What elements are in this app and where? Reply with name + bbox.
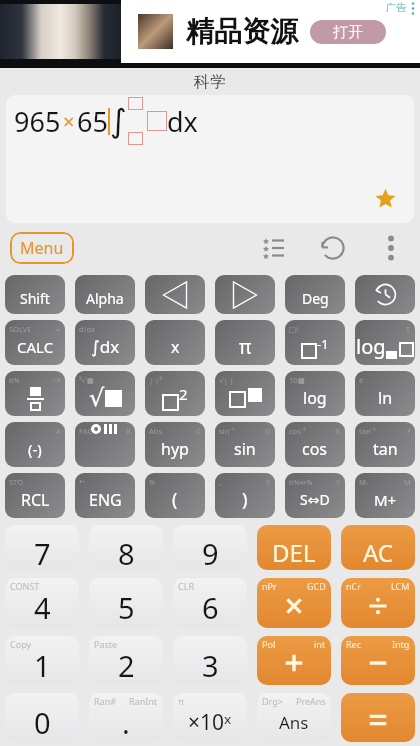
staticText: M xyxy=(404,477,411,487)
button[interactable]: 打开 xyxy=(310,20,386,44)
staticText: ln xyxy=(378,387,393,409)
button[interactable]: nPr xyxy=(257,578,331,628)
button[interactable]: Copy xyxy=(5,636,79,685)
button[interactable]: 7 xyxy=(5,525,79,570)
button[interactable]: Pol xyxy=(257,636,331,685)
staticText: (-) xyxy=(28,439,42,459)
button[interactable] xyxy=(215,275,275,314)
button[interactable]: Drg> xyxy=(257,693,331,742)
button[interactable]: 965 xyxy=(6,95,414,223)
button[interactable]: CONST xyxy=(5,578,79,628)
button[interactable] xyxy=(145,275,205,314)
staticText: D xyxy=(265,426,271,436)
button[interactable]: | |³ xyxy=(145,371,205,416)
button[interactable]: FACT xyxy=(75,422,135,467)
staticText: . xyxy=(122,703,130,742)
staticText: nCr xyxy=(346,580,361,592)
button[interactable]: π xyxy=(173,693,247,742)
button[interactable]: 5 xyxy=(89,578,163,628)
button[interactable]: 0 xyxy=(5,693,79,742)
button[interactable]: Deg xyxy=(285,275,345,314)
button[interactable]: π xyxy=(215,320,275,365)
button[interactable]: ³√■ xyxy=(75,371,135,416)
staticText: 4 xyxy=(34,588,51,627)
button[interactable]: 10■ xyxy=(285,371,345,416)
button[interactable]: x xyxy=(145,320,205,365)
button[interactable]: M- xyxy=(355,473,415,518)
button[interactable]: Σ xyxy=(355,320,415,365)
button[interactable]: b% xyxy=(5,371,65,416)
button[interactable]: A xyxy=(5,422,65,467)
button[interactable]: □! xyxy=(285,320,345,365)
staticText: Ans xyxy=(279,711,309,734)
staticText: CALC xyxy=(17,337,54,357)
staticText: Abs xyxy=(149,426,162,436)
staticText: Menu xyxy=(20,237,64,259)
button[interactable]: cos⁻¹ xyxy=(285,422,345,467)
button[interactable] xyxy=(341,693,415,742)
staticText: Y xyxy=(336,477,341,487)
staticText: , xyxy=(219,477,222,487)
button[interactable]: DEL xyxy=(257,525,331,570)
staticText: 6 xyxy=(202,588,219,627)
button[interactable]: Paste xyxy=(89,636,163,685)
button[interactable]: ← xyxy=(75,473,135,518)
other: Favorite xyxy=(375,188,396,209)
staticText: Deg xyxy=(302,289,329,308)
button[interactable]: SOLVE xyxy=(5,320,65,365)
button[interactable] xyxy=(355,275,415,314)
button[interactable]: sin⁻¹ xyxy=(215,422,275,467)
staticText: 精品资源 xyxy=(186,14,298,49)
staticText: Shift xyxy=(20,289,50,308)
staticText: tan xyxy=(373,438,398,460)
button[interactable]: 3 xyxy=(173,636,247,685)
button[interactable]: Undo xyxy=(320,235,346,261)
staticText: ×10ˣ xyxy=(188,708,232,737)
staticText: sin xyxy=(234,438,256,460)
staticText: Σ xyxy=(406,324,411,334)
staticText: 广告 xyxy=(386,1,406,14)
staticText: ∫ xyxy=(110,102,127,139)
staticText: M- xyxy=(359,477,369,487)
button[interactable]: AC xyxy=(341,525,415,570)
button[interactable]: √| | xyxy=(215,371,275,416)
button[interactable]: nCr xyxy=(341,578,415,628)
staticText: E xyxy=(336,426,341,436)
button[interactable]: More options xyxy=(385,235,397,261)
staticText: cos⁻¹ xyxy=(289,426,306,436)
staticText: FACT xyxy=(79,426,97,436)
staticText: 65 xyxy=(77,103,108,140)
button[interactable]: % xyxy=(145,473,205,518)
button[interactable]: Abs xyxy=(145,422,205,467)
button[interactable]: Menu xyxy=(10,232,74,264)
button[interactable]: Ran# xyxy=(89,693,163,742)
button[interactable]: 9 xyxy=(173,525,247,570)
staticText: ← xyxy=(79,477,86,486)
button[interactable]: 8 xyxy=(89,525,163,570)
staticText: × xyxy=(63,108,75,135)
staticText: F xyxy=(407,426,411,436)
staticText: b% xyxy=(9,375,20,385)
staticText: PreAns xyxy=(296,695,326,707)
staticText: 8 xyxy=(118,534,135,570)
button[interactable]: Shift xyxy=(5,275,65,314)
staticText: -1 xyxy=(317,335,329,353)
staticText: 2 xyxy=(118,646,135,685)
staticText: √ xyxy=(89,384,105,412)
button[interactable]: e xyxy=(355,371,415,416)
staticText: Copy xyxy=(10,638,32,650)
staticText: Drg> xyxy=(262,695,283,707)
button[interactable]: Alpha xyxy=(75,275,135,314)
staticText: 7 xyxy=(34,534,51,570)
staticText: CLR xyxy=(178,580,195,592)
button[interactable]: CLR xyxy=(173,578,247,628)
button[interactable]: History list xyxy=(263,238,287,262)
button[interactable]: tan⁻¹ xyxy=(355,422,415,467)
button[interactable]: b%⇔% xyxy=(285,473,345,518)
button[interactable]: , xyxy=(215,473,275,518)
button[interactable]: d/dx xyxy=(75,320,135,365)
staticText: A xyxy=(56,426,61,436)
button[interactable]: STO xyxy=(5,473,65,518)
button[interactable]: Rec xyxy=(341,636,415,685)
staticText: Ran# xyxy=(94,695,117,707)
